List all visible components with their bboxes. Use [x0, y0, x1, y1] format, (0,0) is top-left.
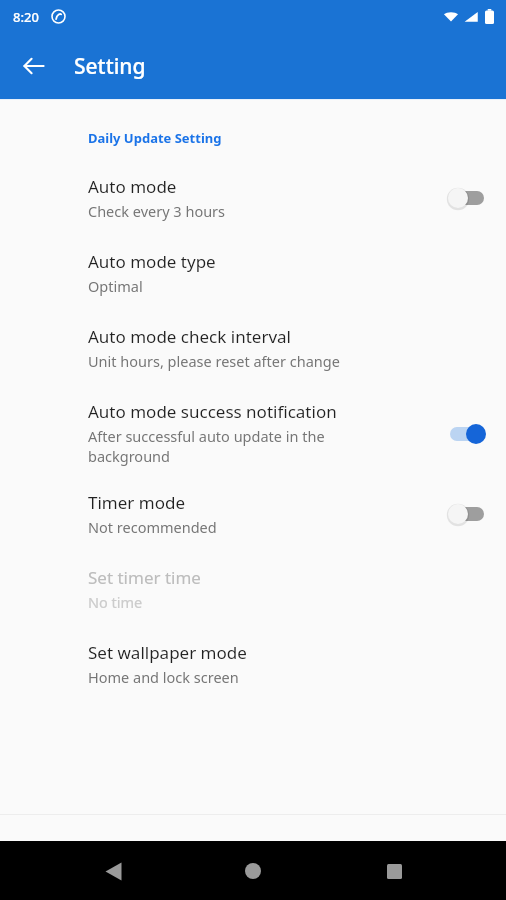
staticText: Auto mode	[88, 175, 177, 198]
button[interactable]: Back	[10, 42, 58, 90]
button[interactable]: Recent apps	[366, 843, 422, 899]
button[interactable]: Off	[444, 497, 490, 531]
staticText: Unit hours, please reset after change	[88, 351, 340, 371]
staticText: Optimal	[88, 276, 143, 296]
button[interactable]: On	[444, 417, 490, 451]
staticText: Auto mode check interval	[88, 325, 291, 348]
staticText: Set wallpaper mode	[88, 641, 247, 664]
button[interactable]: Back	[85, 843, 141, 899]
staticText: Daily Update Setting	[88, 129, 222, 147]
staticText: Auto mode type	[88, 250, 216, 273]
button[interactable]: Set timer time	[0, 566, 506, 612]
button[interactable]: Auto mode check interval	[0, 325, 506, 371]
button[interactable]: Off	[444, 181, 490, 215]
button[interactable]: Home	[225, 843, 281, 899]
button[interactable]: Set wallpaper mode	[0, 641, 506, 687]
staticText: Not recommended	[88, 517, 217, 537]
staticText: Home and lock screen	[88, 667, 239, 687]
button[interactable]: Auto mode	[0, 175, 506, 221]
staticText: No time	[88, 592, 143, 612]
staticText: Auto mode success notification	[88, 400, 337, 423]
staticText: Check every 3 hours	[88, 201, 226, 221]
staticText: Set timer time	[88, 566, 201, 589]
staticText: 8:20	[13, 8, 39, 26]
button[interactable]: Auto mode type	[0, 250, 506, 296]
button[interactable]: Auto mode success notification	[0, 400, 506, 467]
staticText: After successful auto update in the back…	[88, 426, 378, 467]
staticText: Setting	[74, 52, 146, 81]
staticText: Timer mode	[88, 491, 185, 514]
button[interactable]: Timer mode	[0, 491, 506, 537]
